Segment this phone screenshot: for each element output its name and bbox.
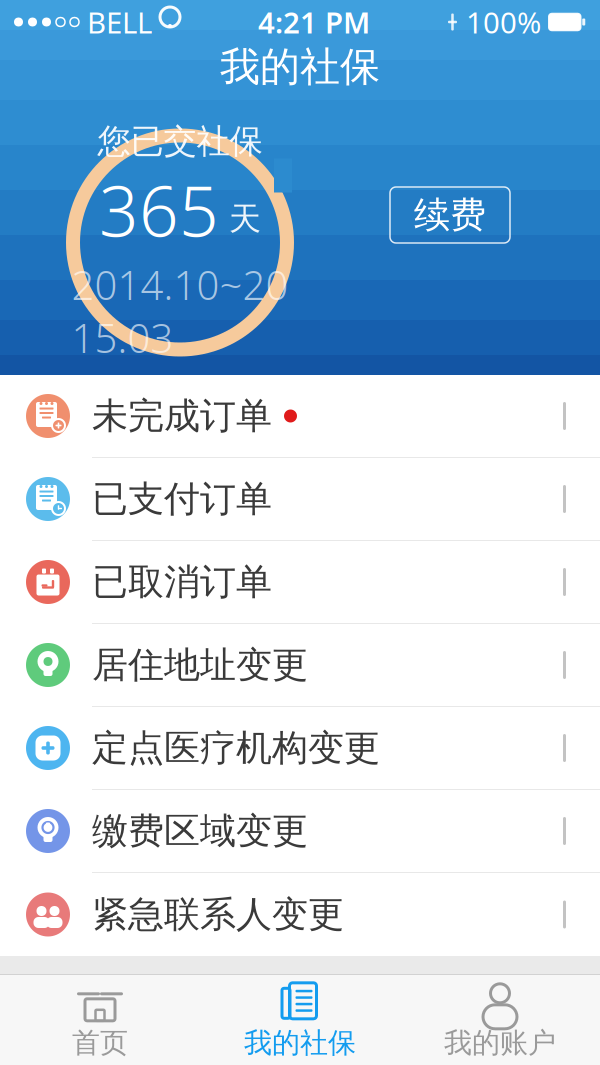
staticText: 365 — [99, 164, 219, 256]
staticText: 已取消订单 — [92, 560, 272, 604]
staticText: 续费 — [414, 193, 486, 237]
button[interactable]: 我的社保 — [200, 975, 400, 1065]
button[interactable]: 首页 — [0, 975, 200, 1065]
button[interactable]: 居住地址变更 — [0, 624, 600, 707]
staticText: 我的账户 — [444, 1026, 556, 1060]
staticText: 定点医疗机构变更 — [92, 726, 380, 770]
staticText: 4:21 PM — [258, 2, 370, 41]
staticText: 居住地址变更 — [92, 643, 308, 687]
staticText: 100% — [466, 2, 541, 41]
button[interactable]: 我的账户 — [400, 975, 600, 1065]
button[interactable]: 定点医疗机构变更 — [0, 707, 600, 790]
button[interactable]: 已支付订单 — [0, 458, 600, 541]
staticText: 已支付订单 — [92, 477, 272, 521]
staticText: 未完成订单 — [92, 394, 272, 438]
button[interactable]: 紧急联系人变更 — [0, 873, 600, 956]
staticText: 紧急联系人变更 — [92, 892, 344, 937]
button[interactable]: 已取消订单 — [0, 541, 600, 624]
button[interactable]: 缴费区域变更 — [0, 790, 600, 873]
button[interactable]: 未完成订单 — [0, 375, 600, 458]
staticText: 我的社保 — [244, 1026, 356, 1060]
staticText: BELL — [87, 2, 152, 41]
staticText: 首页 — [72, 1026, 128, 1060]
staticText: 我的社保 — [220, 42, 380, 91]
staticText: 2014.10~2015.03 — [71, 258, 288, 364]
staticText: 缴费区域变更 — [92, 809, 308, 853]
staticText: 您已交社保 — [97, 121, 262, 162]
staticText: 天 — [229, 199, 261, 238]
button[interactable]: 续费 — [390, 187, 510, 243]
